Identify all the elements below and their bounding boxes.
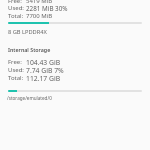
staticText: Internal Storage [8,46,51,53]
staticText: 5419 MiB [26,0,53,5]
staticText: /storage/emulated/0 [7,95,52,101]
staticText: 7700 MiB [26,12,53,20]
staticText: Used: [8,4,24,12]
staticText: 112.17 GiB [26,74,61,83]
button[interactable] [0,0,150,40]
staticText: Free: [8,0,22,5]
staticText: 104.43 GiB [26,58,61,67]
staticText: Free: [8,58,22,66]
button[interactable] [0,42,150,106]
staticText: Used: [8,66,24,74]
staticText: 2281 MiB 30% [26,4,68,13]
staticText: Total: [8,74,24,82]
staticText: Total: [8,12,24,20]
staticText: 7.74 GiB 7% [26,66,64,75]
staticText: 8 GB LPDDR4X [8,28,47,36]
